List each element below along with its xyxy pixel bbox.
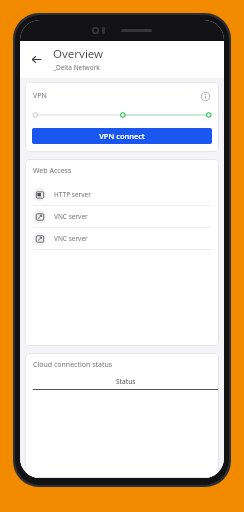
button[interactable]: VPN connect bbox=[32, 128, 212, 144]
button[interactable]: VNC server bbox=[25, 228, 219, 249]
staticText: Status bbox=[116, 377, 136, 386]
button[interactable]: HTTP server bbox=[25, 184, 219, 205]
staticText: Web Access bbox=[33, 166, 72, 176]
button[interactable]: Back bbox=[26, 49, 46, 69]
staticText: VNC server bbox=[54, 234, 88, 243]
staticText: Overview bbox=[53, 46, 104, 62]
staticText: VPN connect bbox=[99, 131, 145, 141]
staticText: VPN bbox=[33, 91, 47, 101]
button[interactable]: Status bbox=[33, 377, 219, 390]
staticText: VNC server bbox=[54, 212, 88, 221]
staticText: _Delta Network bbox=[53, 63, 100, 72]
button[interactable]: VNC server bbox=[25, 206, 219, 227]
staticText: HTTP server bbox=[54, 190, 91, 199]
staticText: Cloud connection status bbox=[33, 360, 113, 370]
button[interactable]: Info bbox=[198, 89, 212, 103]
